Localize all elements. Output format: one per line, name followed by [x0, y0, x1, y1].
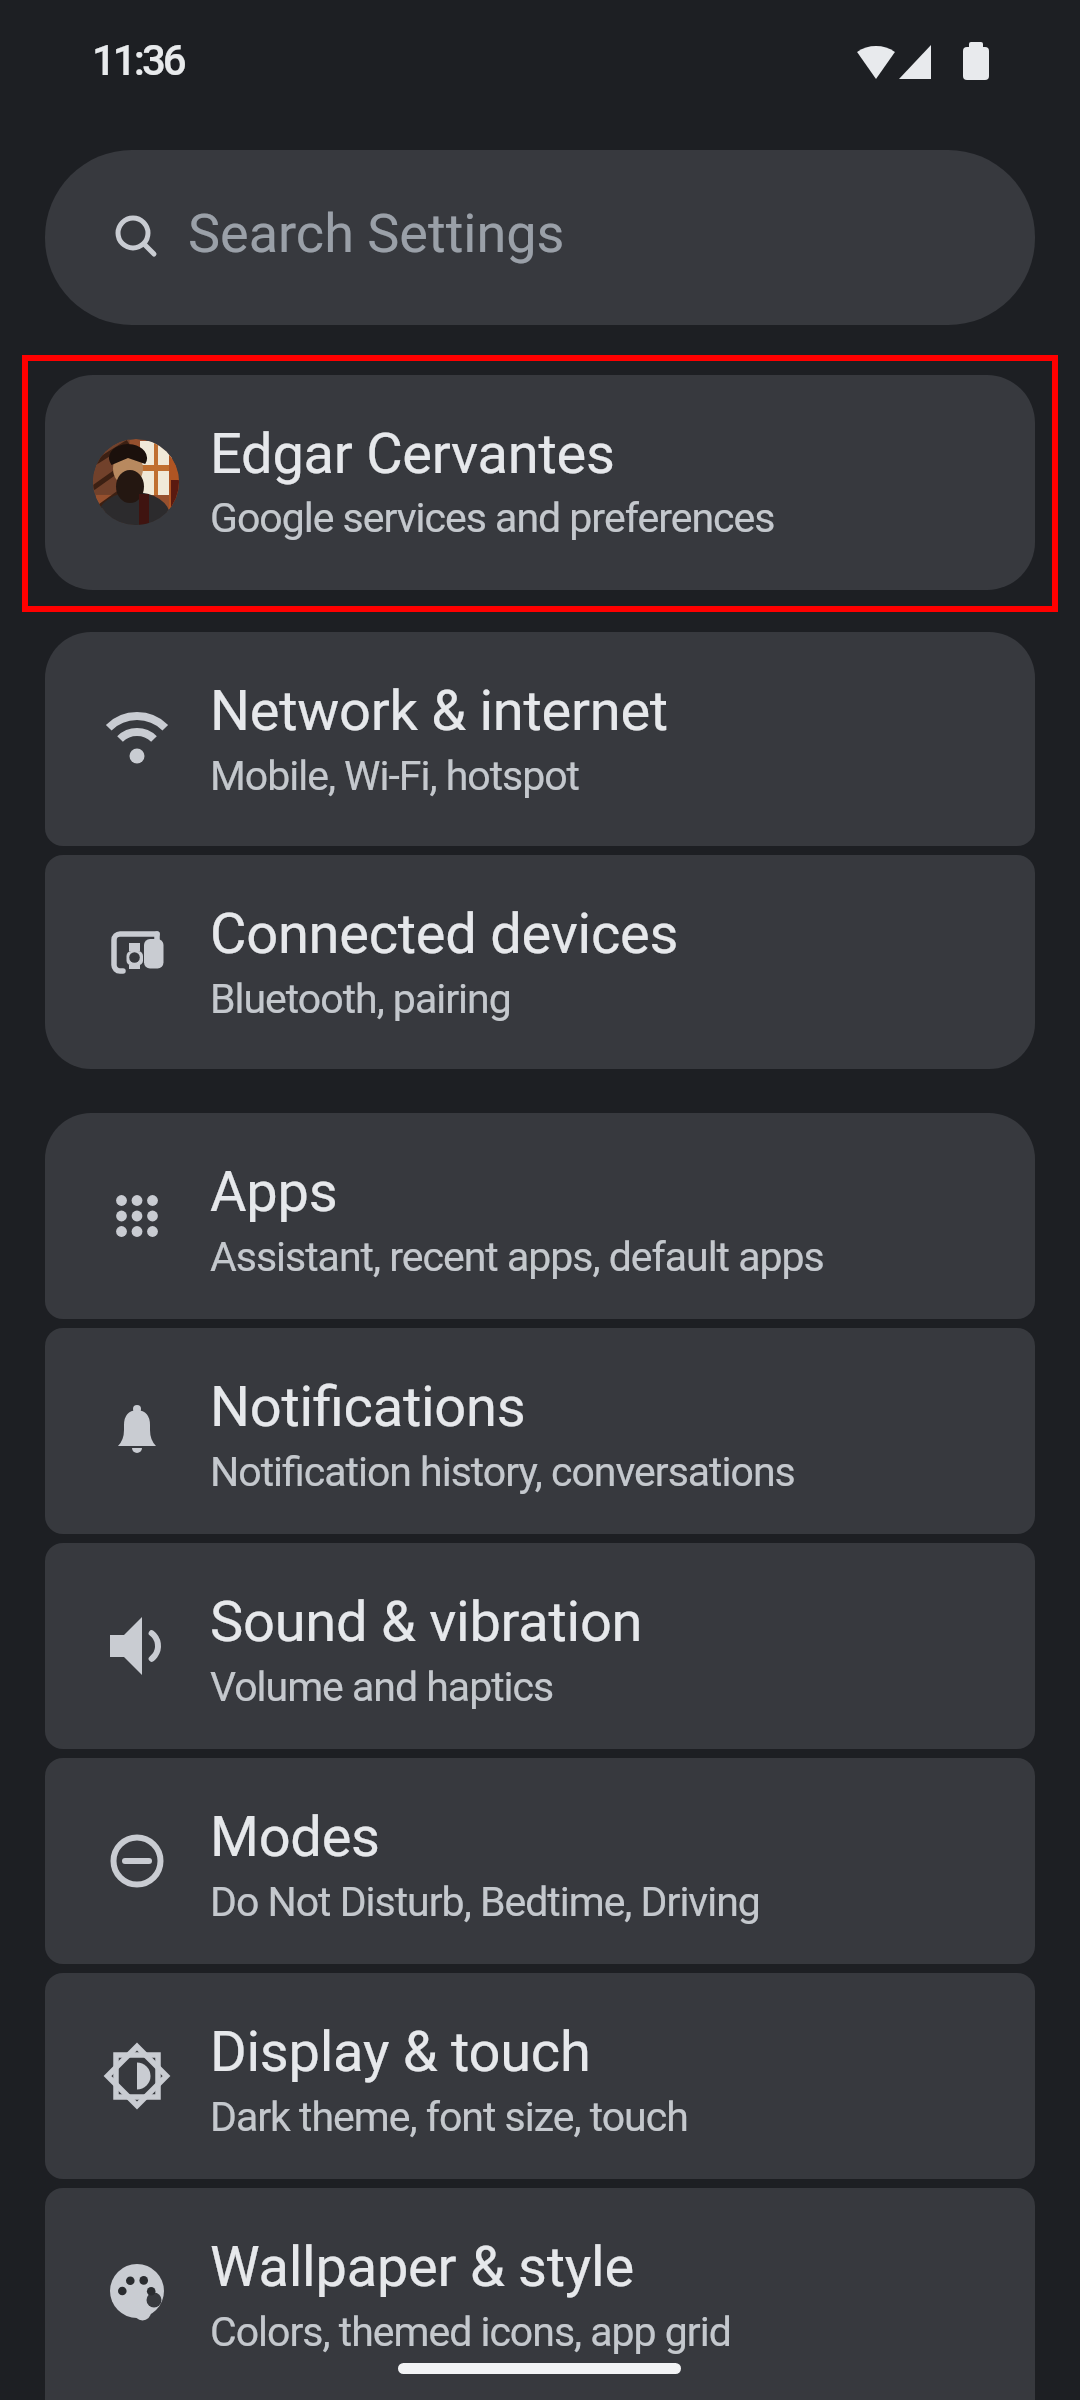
staticText: Wallpaper & style [210, 2234, 634, 2300]
staticText: Apps [210, 1159, 338, 1225]
staticText: Notification history, conversations [210, 1448, 795, 1496]
button[interactable]: Wallpaper & style [45, 2188, 1035, 2400]
button[interactable]: Apps [45, 1113, 1035, 1319]
staticText: Dark theme, font size, touch [210, 2093, 688, 2141]
staticText: Do Not Disturb, Bedtime, Driving [210, 1878, 760, 1926]
button[interactable]: Edgar Cervantes [45, 375, 1035, 590]
button[interactable]: Display & touch [45, 1973, 1035, 2179]
staticText: Google services and preferences [210, 494, 775, 542]
staticText: Volume and haptics [210, 1663, 554, 1711]
staticText: Mobile, Wi-Fi, hotspot [210, 752, 580, 800]
staticText: Assistant, recent apps, default apps [210, 1233, 824, 1281]
button[interactable]: Connected devices [45, 855, 1035, 1069]
staticText: Connected devices [210, 901, 679, 967]
staticText: Notifications [210, 1374, 526, 1440]
staticText: Network & internet [210, 678, 668, 744]
button[interactable]: Notifications [45, 1328, 1035, 1534]
staticText: Bluetooth, pairing [210, 975, 511, 1023]
button[interactable]: Sound & vibration [45, 1543, 1035, 1749]
button[interactable]: Modes [45, 1758, 1035, 1964]
staticText: Search Settings [188, 202, 565, 265]
button[interactable]: Network & internet [45, 632, 1035, 846]
button[interactable]: Search Settings [45, 150, 1035, 325]
staticText: Edgar Cervantes [210, 421, 615, 487]
staticText: Sound & vibration [210, 1589, 643, 1655]
staticText: Display & touch [210, 2019, 591, 2085]
staticText: Modes [210, 1804, 380, 1870]
staticText: Colors, themed icons, app grid [210, 2308, 731, 2356]
staticText: 11:36 [92, 36, 184, 85]
